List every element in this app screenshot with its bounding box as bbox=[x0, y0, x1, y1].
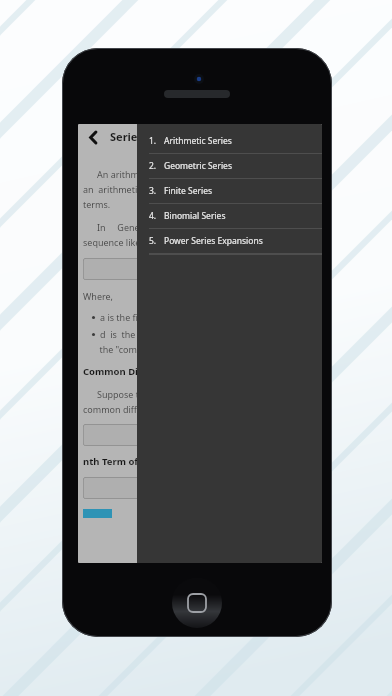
staticText: terms. bbox=[83, 198, 111, 210]
button[interactable]: Home bbox=[172, 578, 222, 628]
staticText: an arithmetic progression bbox=[83, 183, 197, 195]
staticText: An arithmetic sequence bbox=[83, 168, 197, 180]
button[interactable]: 1. bbox=[137, 129, 322, 154]
staticText: Series bbox=[110, 129, 143, 144]
staticText: 1. bbox=[149, 135, 157, 147]
staticText: Binomial Series bbox=[164, 210, 226, 222]
staticText: Finite Series bbox=[164, 185, 213, 197]
staticText: the "common value" bbox=[83, 343, 185, 355]
staticText: Power Series Expansions bbox=[164, 235, 263, 247]
staticText: Where, bbox=[83, 290, 114, 302]
staticText: common difference of bbox=[83, 403, 177, 415]
button[interactable]: 5. bbox=[137, 229, 322, 254]
staticText: Arithmetic Series bbox=[164, 135, 232, 147]
staticText: 2. bbox=[149, 160, 157, 172]
staticText: nth Term of the Series bbox=[83, 455, 188, 468]
staticText: 3. bbox=[149, 185, 157, 197]
staticText: sequence like below : bbox=[83, 236, 173, 248]
button[interactable]: 2. bbox=[137, 154, 322, 179]
staticText: 5. bbox=[149, 235, 157, 247]
staticText: a is the first term bbox=[100, 311, 173, 323]
staticText: 4. bbox=[149, 210, 157, 222]
button[interactable]: 4. bbox=[137, 204, 322, 229]
button[interactable]: Back bbox=[83, 127, 103, 147]
button[interactable]: 3. bbox=[137, 179, 322, 204]
staticText: Suppose that we bbox=[83, 388, 168, 400]
staticText: Geometric Series bbox=[164, 160, 232, 172]
staticText: Common Difference bbox=[83, 365, 178, 378]
staticText: d is the difference bbox=[100, 328, 181, 340]
staticText: In General, bbox=[83, 221, 153, 233]
